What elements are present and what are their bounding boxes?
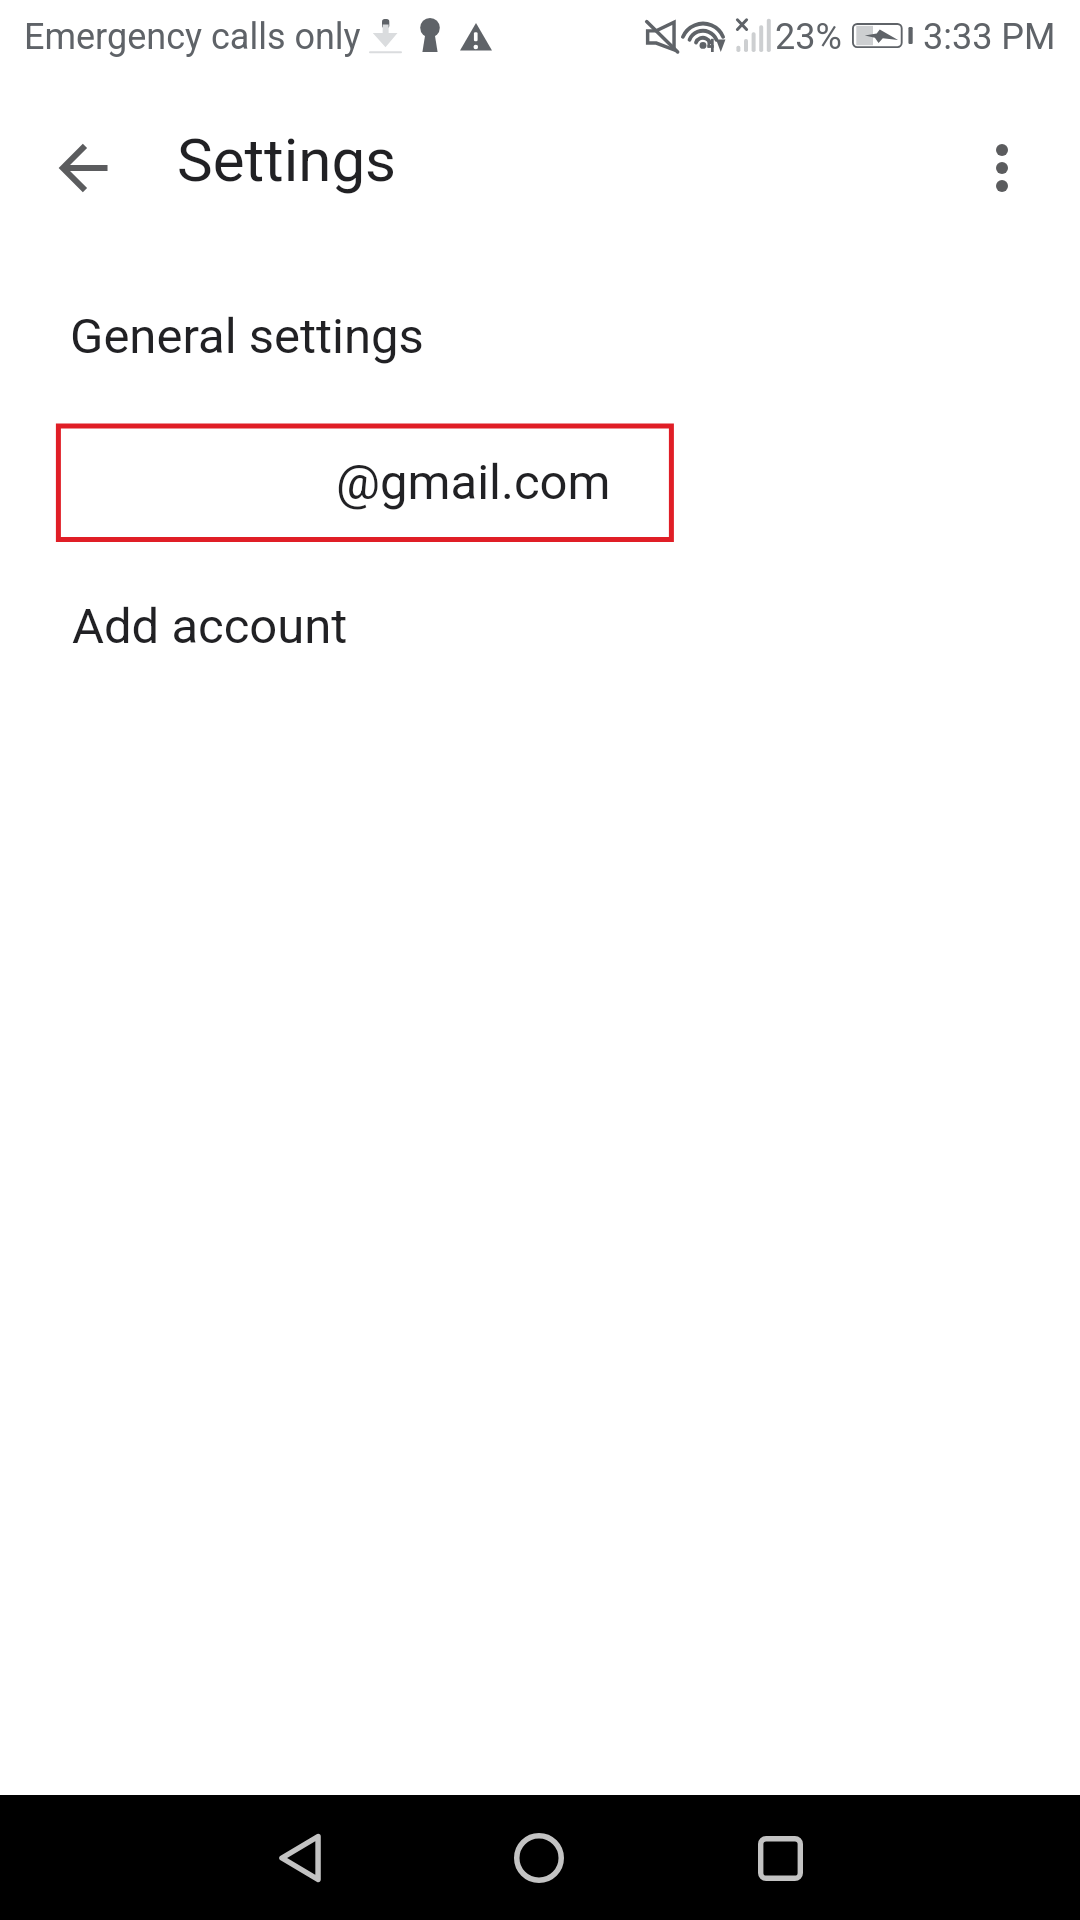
staticText: Emergency calls only xyxy=(24,16,361,58)
staticText: @gmail.com xyxy=(336,454,611,511)
staticText: Add account xyxy=(72,598,348,655)
staticText: 23% xyxy=(775,16,842,58)
button[interactable]: @gmail.com xyxy=(0,424,1080,540)
staticText: 3:33 PM xyxy=(923,16,1056,58)
button[interactable]: Back xyxy=(260,1818,340,1898)
staticText: Settings xyxy=(177,125,397,195)
button[interactable]: Back xyxy=(42,126,126,210)
button[interactable]: Recent apps xyxy=(740,1818,820,1898)
button[interactable]: More options xyxy=(960,126,1044,210)
button[interactable]: Add account xyxy=(0,578,1080,674)
staticText: General settings xyxy=(70,308,424,365)
button[interactable]: Home xyxy=(499,1818,579,1898)
